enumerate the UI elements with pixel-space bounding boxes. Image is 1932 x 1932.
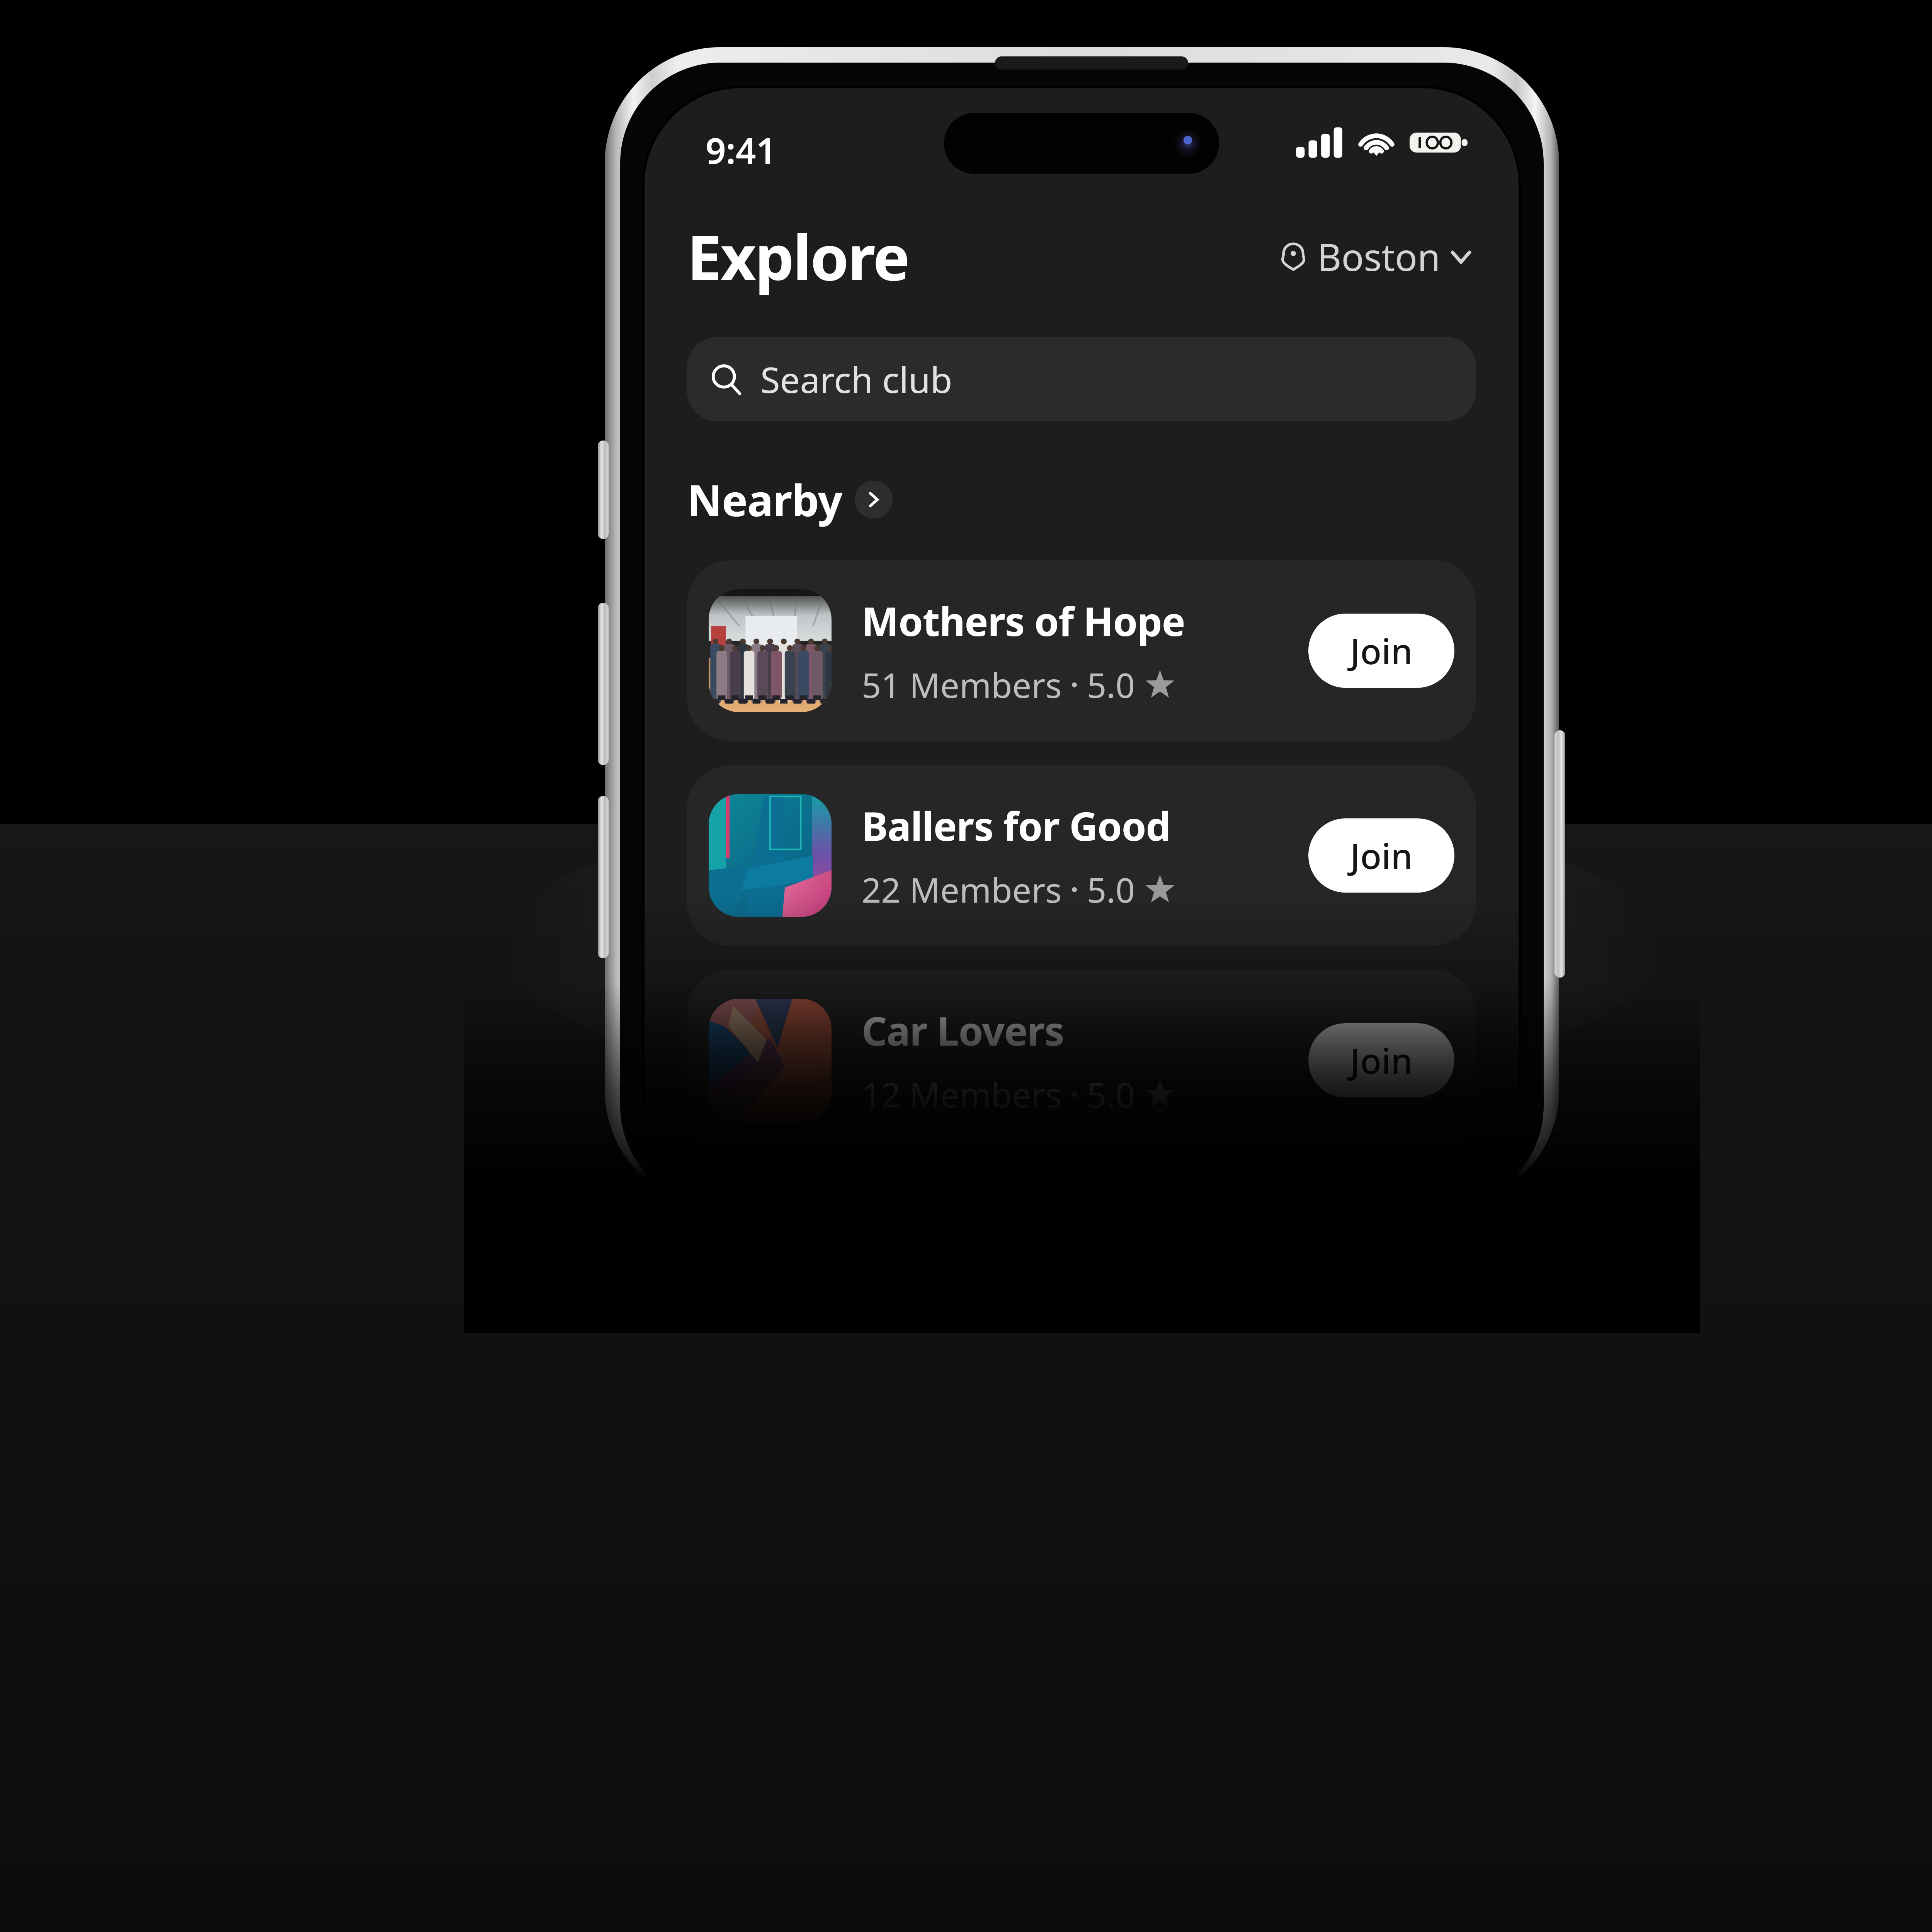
staticText: Boston xyxy=(1317,231,1440,282)
staticText: Mothers of Hope xyxy=(862,594,1185,648)
button[interactable]: Boston xyxy=(1275,227,1476,286)
button[interactable]: Search club xyxy=(687,337,1476,421)
staticText: Join xyxy=(1350,832,1413,879)
staticText: 51 Members xyxy=(862,662,1062,708)
button[interactable]: Join xyxy=(1308,1023,1454,1097)
staticText: 5.0 xyxy=(1087,1071,1135,1117)
button[interactable]: Join xyxy=(1308,614,1454,688)
staticText: Search club xyxy=(760,355,952,403)
staticText: 5.0 xyxy=(1087,866,1135,913)
button[interactable]: Car Lovers xyxy=(687,970,1476,1151)
staticText: 5.0 xyxy=(1087,662,1135,708)
button[interactable]: Mothers of Hope xyxy=(687,560,1476,741)
staticText: Explore xyxy=(687,214,909,298)
staticText: Car Lovers xyxy=(862,1003,1064,1057)
button[interactable]: Ballers for Good xyxy=(687,765,1476,946)
staticText: Ballers for Good xyxy=(862,799,1171,852)
button[interactable]: Nearby xyxy=(687,468,893,531)
button[interactable]: Join xyxy=(1308,818,1454,893)
staticText: 22 Members xyxy=(862,866,1062,913)
staticText: Join xyxy=(1350,627,1413,675)
other: See all nearby clubs xyxy=(855,481,893,519)
staticText: 12 Members xyxy=(862,1071,1062,1117)
staticText: Join xyxy=(1350,1037,1413,1084)
staticText: 9:41 xyxy=(706,126,777,174)
staticText: Nearby xyxy=(687,470,842,529)
